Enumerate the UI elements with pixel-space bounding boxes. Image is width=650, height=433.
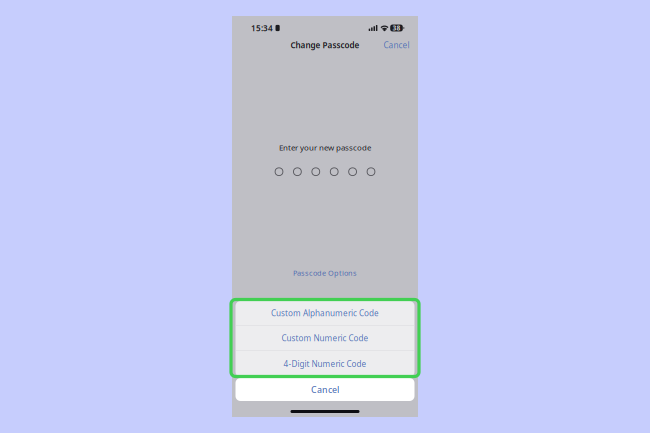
button[interactable]: Passcode Options [293,267,357,278]
staticText: 38 [392,23,400,33]
staticText: Custom Numeric Code [281,332,368,344]
staticText: 4-Digit Numeric Code [283,358,366,369]
button[interactable]: Custom Numeric Code [235,326,414,351]
staticText: Enter your new passcode [279,142,371,153]
staticText: Custom Alphanumeric Code [271,308,379,319]
button[interactable]: Cancel [235,378,414,401]
button[interactable]: Cancel [383,39,418,51]
staticText: Passcode Options [293,268,357,278]
staticText: Cancel [383,39,409,51]
staticText: Change Passcode [290,39,359,51]
button[interactable]: 4-Digit Numeric Code [235,351,414,377]
staticText: Cancel [311,383,339,395]
staticText: 15:34 [251,22,273,34]
button[interactable]: Custom Alphanumeric Code [235,301,414,326]
